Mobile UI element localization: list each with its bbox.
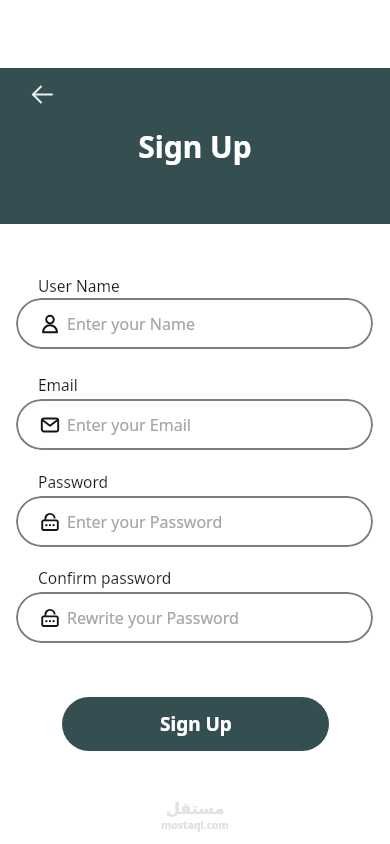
- staticText: mostaql.com: [161, 818, 229, 832]
- button[interactable]: [22, 74, 62, 114]
- button[interactable]: Rewrite your Password: [16, 592, 373, 643]
- staticText: Enter your Name: [67, 313, 195, 335]
- staticText: Password: [38, 471, 109, 492]
- staticText: Rewrite your Password: [67, 607, 239, 629]
- staticText: Sign Up: [160, 711, 232, 737]
- staticText: Email: [38, 374, 78, 395]
- button[interactable]: Enter your Email: [16, 399, 373, 450]
- button[interactable]: Enter your Password: [16, 496, 373, 547]
- staticText: User Name: [38, 275, 120, 296]
- staticText: Confirm password: [38, 567, 172, 588]
- staticText: Sign Up: [138, 126, 252, 167]
- staticText: Enter your Password: [67, 511, 223, 533]
- button[interactable]: Enter your Name: [16, 298, 373, 349]
- staticText: مستقل: [166, 799, 225, 818]
- button[interactable]: Sign Up: [62, 697, 329, 751]
- staticText: Enter your Email: [67, 414, 191, 436]
